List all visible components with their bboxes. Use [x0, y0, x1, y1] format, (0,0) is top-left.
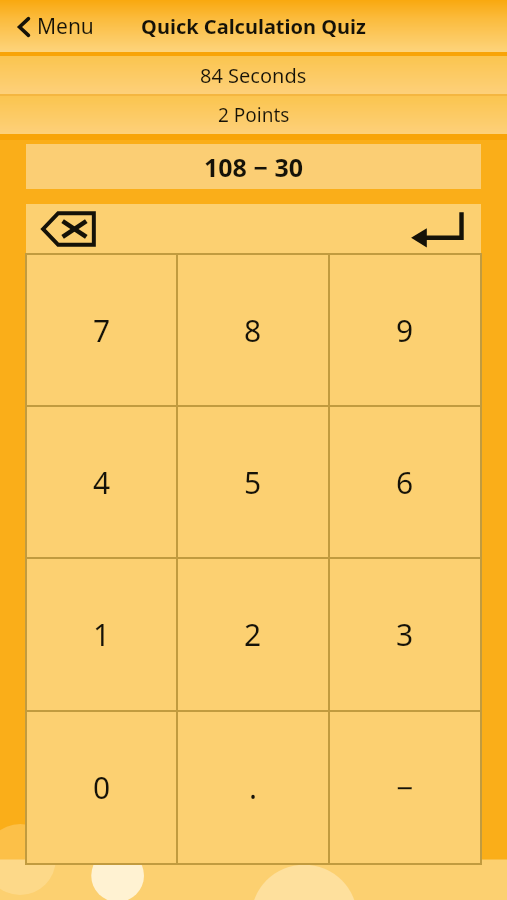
staticText: Menu	[37, 12, 94, 41]
staticText: 1	[93, 614, 111, 655]
staticText: −	[396, 767, 414, 808]
staticText: 8	[244, 310, 262, 351]
button[interactable]: 0	[26, 711, 177, 864]
button[interactable]: −	[329, 711, 481, 864]
button[interactable]: 4	[26, 406, 177, 558]
staticText: 5	[244, 462, 262, 503]
staticText: Quick Calculation Quiz	[141, 13, 366, 40]
button[interactable]: 1	[26, 558, 177, 711]
staticText: 7	[93, 310, 111, 351]
staticText: 2 Points	[218, 102, 290, 128]
staticText: 6	[396, 462, 414, 503]
staticText: 84 Seconds	[200, 62, 307, 89]
staticText: 2	[244, 614, 262, 655]
button[interactable]: 7	[26, 254, 177, 406]
button[interactable]: Enter	[395, 204, 481, 254]
button[interactable]: 6	[329, 406, 481, 558]
button[interactable]: 3	[329, 558, 481, 711]
staticText: 9	[396, 310, 414, 351]
staticText: .	[249, 767, 258, 808]
button[interactable]: .	[177, 711, 329, 864]
button[interactable]: 9	[329, 254, 481, 406]
button[interactable]: 2	[177, 558, 329, 711]
button[interactable]: 5	[177, 406, 329, 558]
staticText: 0	[93, 767, 111, 808]
button[interactable]: 8	[177, 254, 329, 406]
button[interactable]: Backspace	[26, 204, 112, 254]
staticText: 3	[396, 614, 414, 655]
staticText: 4	[93, 462, 111, 503]
button[interactable]: Menu	[10, 8, 100, 45]
staticText: 108 − 30	[204, 150, 304, 184]
